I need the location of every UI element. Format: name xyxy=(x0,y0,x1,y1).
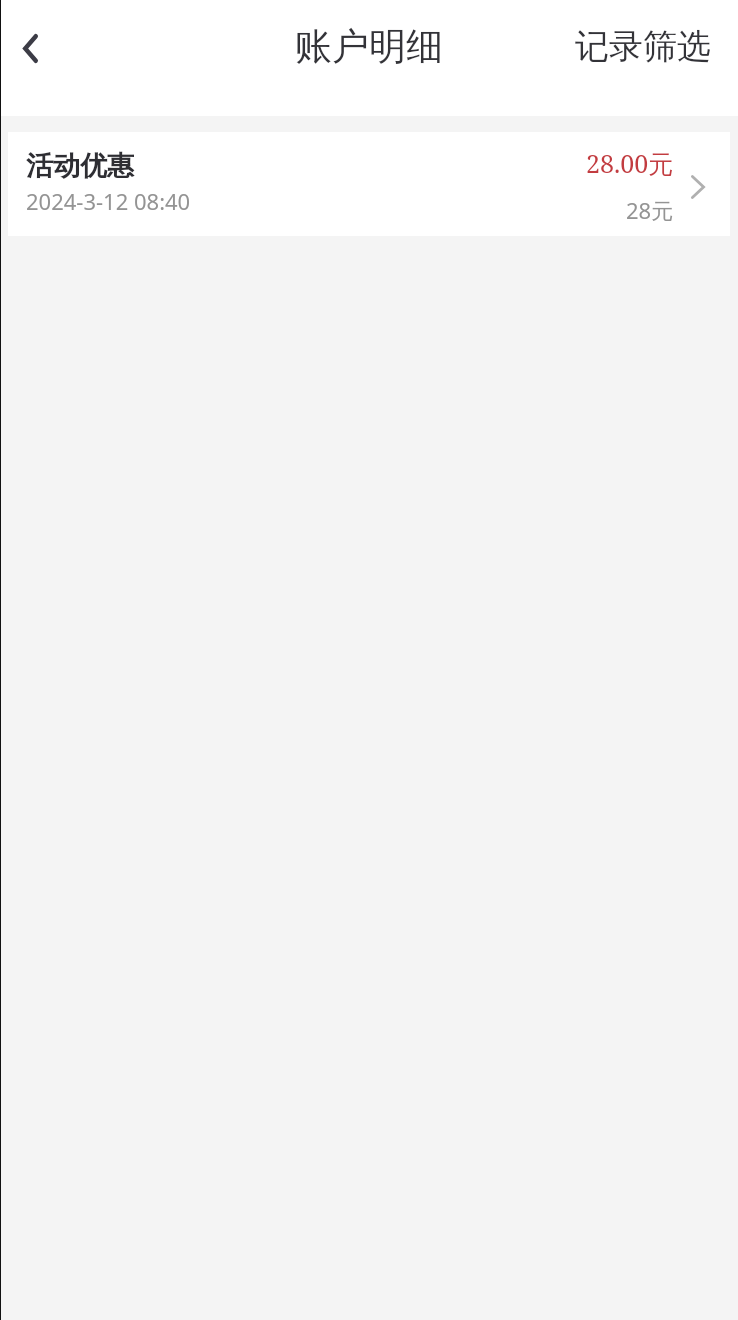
button[interactable]: 活动优惠 xyxy=(8,132,730,236)
staticText: 28.00元 xyxy=(586,146,674,180)
staticText: 活动优惠 xyxy=(26,149,134,183)
button[interactable]: Back xyxy=(0,18,60,78)
staticText: 记录筛选 xyxy=(575,25,711,68)
staticText: 账户明细 xyxy=(295,23,443,70)
button[interactable]: 记录筛选 xyxy=(555,13,738,80)
staticText: 28元 xyxy=(626,195,674,225)
staticText: 2024-3-12 08:40 xyxy=(26,186,191,216)
